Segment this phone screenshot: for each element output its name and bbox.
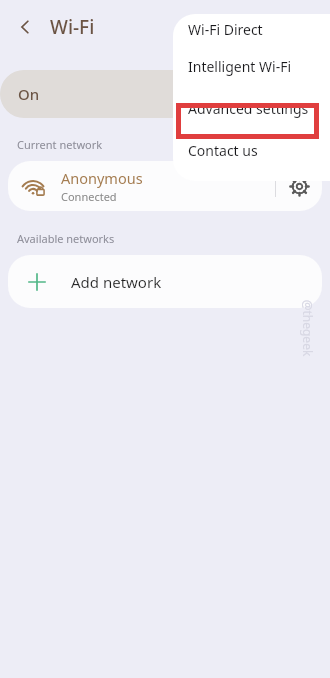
staticText: Anonymous xyxy=(61,168,143,188)
staticText: @thegeekpage.com xyxy=(296,298,316,358)
button[interactable]: Contact us xyxy=(173,129,330,171)
staticText: Contact us xyxy=(188,141,258,160)
button[interactable]: Network settings xyxy=(276,163,322,209)
staticText: Wi-Fi xyxy=(50,14,95,40)
staticText: Current network xyxy=(17,137,103,152)
staticText: Connected xyxy=(61,189,117,204)
staticText: Wi-Fi Direct xyxy=(188,20,263,39)
button[interactable]: Back xyxy=(8,10,42,44)
button[interactable]: Advanced settings xyxy=(173,87,330,129)
staticText: Available networks xyxy=(17,231,115,246)
staticText: Add network xyxy=(71,272,162,292)
staticText: On xyxy=(18,84,40,104)
staticText: Advanced settings xyxy=(188,99,309,118)
button[interactable]: Wi-Fi Direct xyxy=(173,14,330,45)
button[interactable]: Intelligent Wi-Fi xyxy=(173,45,330,87)
button[interactable]: Add network xyxy=(8,255,322,308)
button[interactable]: On xyxy=(0,70,312,118)
staticText: Intelligent Wi-Fi xyxy=(188,57,292,76)
button[interactable]: Anonymous xyxy=(8,168,275,204)
